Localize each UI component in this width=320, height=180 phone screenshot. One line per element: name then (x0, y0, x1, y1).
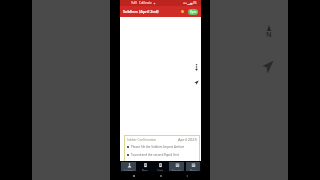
button[interactable]: Alerts (181, 10, 184, 13)
button[interactable]: Soldiers (121, 162, 136, 171)
staticText: Toured and the second Rapid Unit (131, 153, 179, 157)
staticText: Soldiers (April 2nd) (123, 9, 159, 14)
staticText: New (142, 169, 148, 171)
button[interactable]: Please file the Soldiers Import Archive (127, 145, 197, 149)
button[interactable]: Toured and the second Rapid Unit (127, 153, 197, 157)
button[interactable]: More (186, 162, 200, 171)
other: My location (194, 80, 199, 85)
other: Back (186, 175, 188, 177)
staticText: Units (157, 169, 164, 171)
staticText: 9:45 (131, 1, 137, 5)
staticText: More (190, 169, 197, 171)
staticText: Sync (190, 10, 197, 14)
staticText: ◂ ▴ ▂▄ 86 (183, 1, 197, 5)
staticText: Soldiers (124, 169, 134, 171)
other: Map layers (195, 64, 198, 70)
button[interactable]: Sync (188, 9, 198, 15)
staticText: Reports (172, 169, 182, 171)
staticText: Please file the Soldiers Import Archive (131, 145, 185, 149)
staticText: N (266, 30, 272, 40)
staticText: Calibrate (139, 1, 152, 5)
button[interactable]: Units (153, 162, 167, 171)
button[interactable]: New (138, 162, 151, 171)
staticText: April 2025 (178, 137, 197, 142)
button[interactable]: Reports (169, 162, 184, 171)
staticText: Soldier Confirmation (127, 138, 157, 142)
